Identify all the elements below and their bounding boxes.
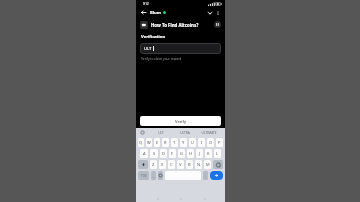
button[interactable]: V <box>177 160 184 169</box>
staticText: G <box>180 151 183 156</box>
button[interactable]: H <box>187 149 194 158</box>
button[interactable]: Key <box>213 160 223 169</box>
staticText: Verification <box>141 34 166 40</box>
button[interactable]: Back <box>139 8 148 17</box>
staticText: 9:12 <box>143 2 149 6</box>
button[interactable]: Verify <box>140 116 221 126</box>
button[interactable]: I <box>198 138 205 147</box>
button[interactable]: ULT <box>148 128 173 137</box>
staticText: How To Find Altcoins? <box>151 22 212 28</box>
button[interactable]: Navigation <box>178 196 183 201</box>
staticText: Z <box>152 162 155 167</box>
button[interactable]: P <box>216 138 223 147</box>
button[interactable]: Clipboard <box>136 128 148 137</box>
staticText: T <box>173 140 176 145</box>
staticText: ULT <box>158 131 164 135</box>
staticText: P <box>218 140 221 145</box>
staticText: E <box>156 140 159 145</box>
staticText: L <box>216 151 219 156</box>
staticText: M <box>206 162 210 167</box>
button[interactable]: K <box>205 149 212 158</box>
button[interactable]: ULTIMATE <box>197 128 221 137</box>
button[interactable]: Z <box>150 160 157 169</box>
staticText: Y <box>182 140 185 145</box>
staticText: , <box>153 174 154 178</box>
staticText: C <box>170 162 173 167</box>
staticText: Q <box>139 140 143 145</box>
staticText: V <box>179 162 182 167</box>
staticText: N <box>197 162 201 167</box>
staticText: Blum <box>150 10 161 16</box>
staticText: W <box>147 140 151 145</box>
button[interactable]: Navigation <box>155 196 160 201</box>
staticText: A <box>143 151 146 156</box>
button[interactable]: D <box>160 149 167 158</box>
staticText: ULT <box>144 46 152 51</box>
button[interactable]: , <box>151 171 156 180</box>
button[interactable]: G <box>178 149 185 158</box>
button[interactable]: M <box>204 160 211 169</box>
button[interactable]: ULTRA <box>173 128 197 137</box>
staticText: H <box>189 151 192 156</box>
staticText: . <box>205 174 206 178</box>
staticText: S <box>153 151 156 156</box>
staticText: ULTRA <box>180 131 190 135</box>
staticText: X <box>161 162 164 167</box>
button[interactable]: How To Find Altcoins? <box>140 18 221 31</box>
staticText: R <box>164 140 167 145</box>
staticText: Verify to claim your reward <box>141 57 182 61</box>
button[interactable]: R <box>162 138 169 147</box>
button[interactable]: L <box>214 149 221 158</box>
button[interactable]: W <box>146 138 152 147</box>
button[interactable]: . <box>203 171 208 180</box>
staticText: U <box>191 140 194 145</box>
button[interactable]: C <box>168 160 175 169</box>
button[interactable]: Expand <box>206 9 214 17</box>
staticText: J <box>199 151 201 156</box>
button[interactable]: U <box>189 138 196 147</box>
staticText: B <box>188 162 191 167</box>
staticText: O <box>209 140 213 145</box>
button[interactable]: A <box>140 149 148 158</box>
button[interactable]: T <box>171 138 178 147</box>
button[interactable]: Y <box>180 138 187 147</box>
button[interactable]: N <box>195 160 202 169</box>
button[interactable]: S <box>150 149 158 158</box>
button[interactable]: Enter <box>210 171 223 180</box>
staticText: F <box>171 151 174 156</box>
button[interactable]: Key <box>138 160 148 169</box>
button[interactable]: B <box>186 160 193 169</box>
button[interactable]: Pause <box>214 21 221 28</box>
button[interactable]: Navigation <box>202 196 207 201</box>
staticText: I <box>201 140 203 145</box>
button[interactable]: Emoji <box>158 171 163 180</box>
button[interactable]: ULT <box>140 43 221 54</box>
button[interactable]: F <box>169 149 176 158</box>
button[interactable]: More options <box>214 9 222 17</box>
staticText: ?123 <box>141 174 147 178</box>
button[interactable]: X <box>159 160 166 169</box>
button[interactable]: E <box>154 138 160 147</box>
button[interactable]: J <box>196 149 203 158</box>
button[interactable]: Q <box>138 138 144 147</box>
staticText: Verify <box>175 119 186 124</box>
staticText: D <box>162 151 165 156</box>
button[interactable]: O <box>207 138 214 147</box>
staticText: K <box>207 151 210 156</box>
button[interactable]: ?123 <box>138 171 149 180</box>
staticText: ULTIMATE <box>201 131 217 135</box>
